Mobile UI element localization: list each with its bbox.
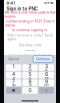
staticText: ABC bbox=[28, 69, 31, 72]
staticText: Cancel bbox=[8, 57, 19, 61]
staticText: MNO bbox=[44, 77, 48, 79]
staticText: One-time code bbox=[18, 43, 41, 47]
staticText: 4 bbox=[12, 71, 15, 77]
staticText: number ending in 4721. Enter it below bbox=[5, 19, 54, 27]
button[interactable]: 4 bbox=[6, 72, 21, 78]
button[interactable]: 2 bbox=[22, 64, 38, 71]
button[interactable]: Delete bbox=[39, 87, 54, 94]
staticText: Remember this device bbox=[14, 59, 50, 63]
staticText: 7 bbox=[12, 79, 15, 85]
staticText: WXYZ bbox=[44, 85, 49, 87]
staticText: 1 bbox=[13, 64, 15, 69]
staticText: Sign in to PNC bbox=[7, 6, 38, 12]
staticText: 9 bbox=[45, 79, 48, 85]
staticText: Didn't receive a code? Send again bbox=[7, 34, 52, 41]
button[interactable]: Continue bbox=[33, 56, 53, 62]
staticText: 2 bbox=[28, 64, 31, 69]
button[interactable]: 0 bbox=[22, 87, 38, 94]
staticText: PQRS bbox=[12, 85, 16, 87]
staticText: to continue signing in. bbox=[12, 28, 48, 32]
staticText: TUV bbox=[28, 85, 31, 87]
staticText: 5 bbox=[28, 71, 31, 77]
button[interactable]: 1 bbox=[6, 64, 21, 71]
staticText: We sent a one-time code to the mobile bbox=[4, 11, 55, 19]
staticText: DEF bbox=[45, 69, 48, 72]
button[interactable]: 3 bbox=[39, 64, 54, 71]
button[interactable]: 7 bbox=[6, 79, 21, 86]
staticText: 9:41 bbox=[7, 1, 16, 5]
button[interactable]: Remember this device bbox=[9, 59, 51, 63]
staticText: x bbox=[45, 88, 47, 92]
button[interactable]: 5 bbox=[22, 72, 38, 78]
staticText: 0 bbox=[28, 87, 31, 93]
staticText: This code expires in 10 minutes bbox=[7, 54, 52, 57]
staticText: 6 bbox=[45, 71, 48, 77]
staticText: 3 bbox=[45, 64, 48, 69]
staticText: Continue bbox=[36, 57, 50, 61]
button[interactable]: 6 bbox=[39, 72, 54, 78]
staticText: JKL bbox=[28, 77, 31, 79]
button[interactable]: 8 bbox=[22, 79, 38, 86]
staticText: GHI bbox=[13, 77, 15, 79]
button[interactable]: 9 bbox=[39, 79, 54, 86]
button[interactable]: Switch keyboard bbox=[6, 87, 21, 94]
button[interactable]: Cancel bbox=[7, 56, 20, 62]
staticText: 8 bbox=[28, 79, 31, 85]
